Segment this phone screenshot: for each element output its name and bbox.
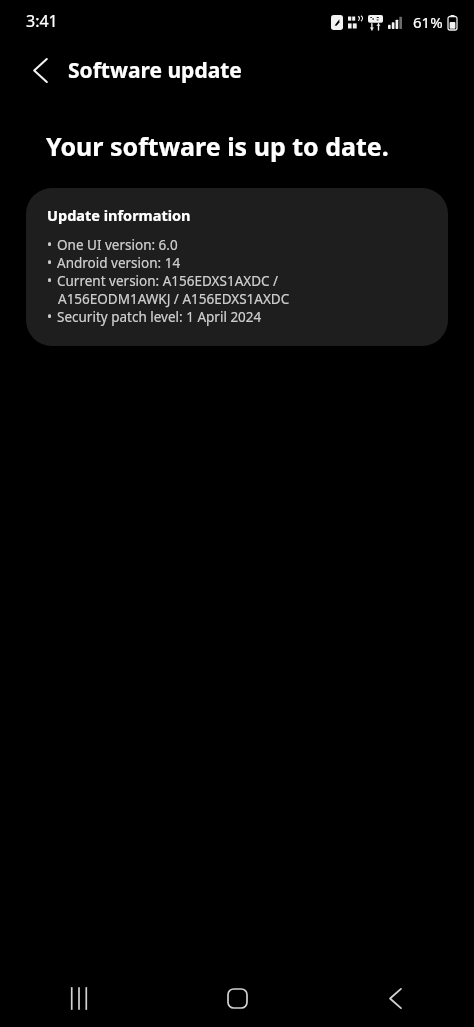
- staticText: •: [47, 254, 53, 272]
- staticText: Current version: A156EDXS1AXDC /: [57, 272, 279, 290]
- staticText: Your software is up to date.: [46, 129, 389, 163]
- staticText: 3:41: [26, 10, 58, 32]
- button[interactable]: Update information: [26, 188, 448, 346]
- button[interactable]: Back: [316, 969, 474, 1027]
- button[interactable]: Navigate up: [18, 48, 62, 92]
- staticText: •: [47, 272, 53, 290]
- staticText: •: [47, 236, 53, 254]
- staticText: •: [47, 308, 53, 326]
- staticText: 61%: [413, 12, 443, 32]
- button[interactable]: Recent apps: [0, 969, 158, 1027]
- staticText: Update information: [47, 205, 191, 225]
- staticText: One UI version: 6.0: [57, 236, 178, 254]
- staticText: Software update: [68, 56, 242, 85]
- button[interactable]: Home: [158, 969, 316, 1027]
- staticText: A156EODM1AWKJ / A156EDXS1AXDC: [58, 290, 290, 308]
- staticText: Android version: 14: [57, 254, 181, 272]
- staticText: Security patch level: 1 April 2024: [57, 308, 262, 326]
